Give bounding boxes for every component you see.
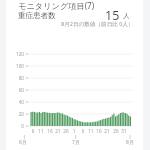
staticText: 60 xyxy=(6,87,24,93)
staticText: 6 xyxy=(78,128,88,134)
button[interactable]: モニタリング項目(7) xyxy=(6,0,143,150)
staticText: 120 xyxy=(6,51,24,57)
staticText: 11 xyxy=(36,128,46,134)
staticText: モニタリング項目(7) xyxy=(18,0,95,11)
staticText: 人 xyxy=(123,12,130,20)
staticText: 16 xyxy=(94,128,104,134)
staticText: 40 xyxy=(6,99,24,105)
staticText: 80 xyxy=(6,75,24,81)
staticText: 26 xyxy=(61,128,71,134)
staticText: 21 xyxy=(102,128,112,134)
staticText: 16 xyxy=(45,128,55,134)
staticText: 重症患者数 xyxy=(18,11,56,20)
staticText: 7月 xyxy=(69,139,83,146)
staticText: 31 xyxy=(119,128,129,134)
staticText: 8月 xyxy=(123,139,137,146)
staticText: 15 xyxy=(105,7,120,24)
staticText: 11 xyxy=(86,128,96,134)
staticText: 1 xyxy=(69,128,79,134)
staticText: 6月 xyxy=(16,139,30,146)
staticText: 8月2日の数値（前日比 0人） xyxy=(61,20,134,28)
staticText: 20 xyxy=(6,111,24,117)
staticText: 0 xyxy=(6,123,24,129)
staticText: 26 xyxy=(111,128,121,134)
staticText: 6 xyxy=(28,128,38,134)
staticText: 100 xyxy=(6,63,24,69)
staticText: 21 xyxy=(53,128,63,134)
